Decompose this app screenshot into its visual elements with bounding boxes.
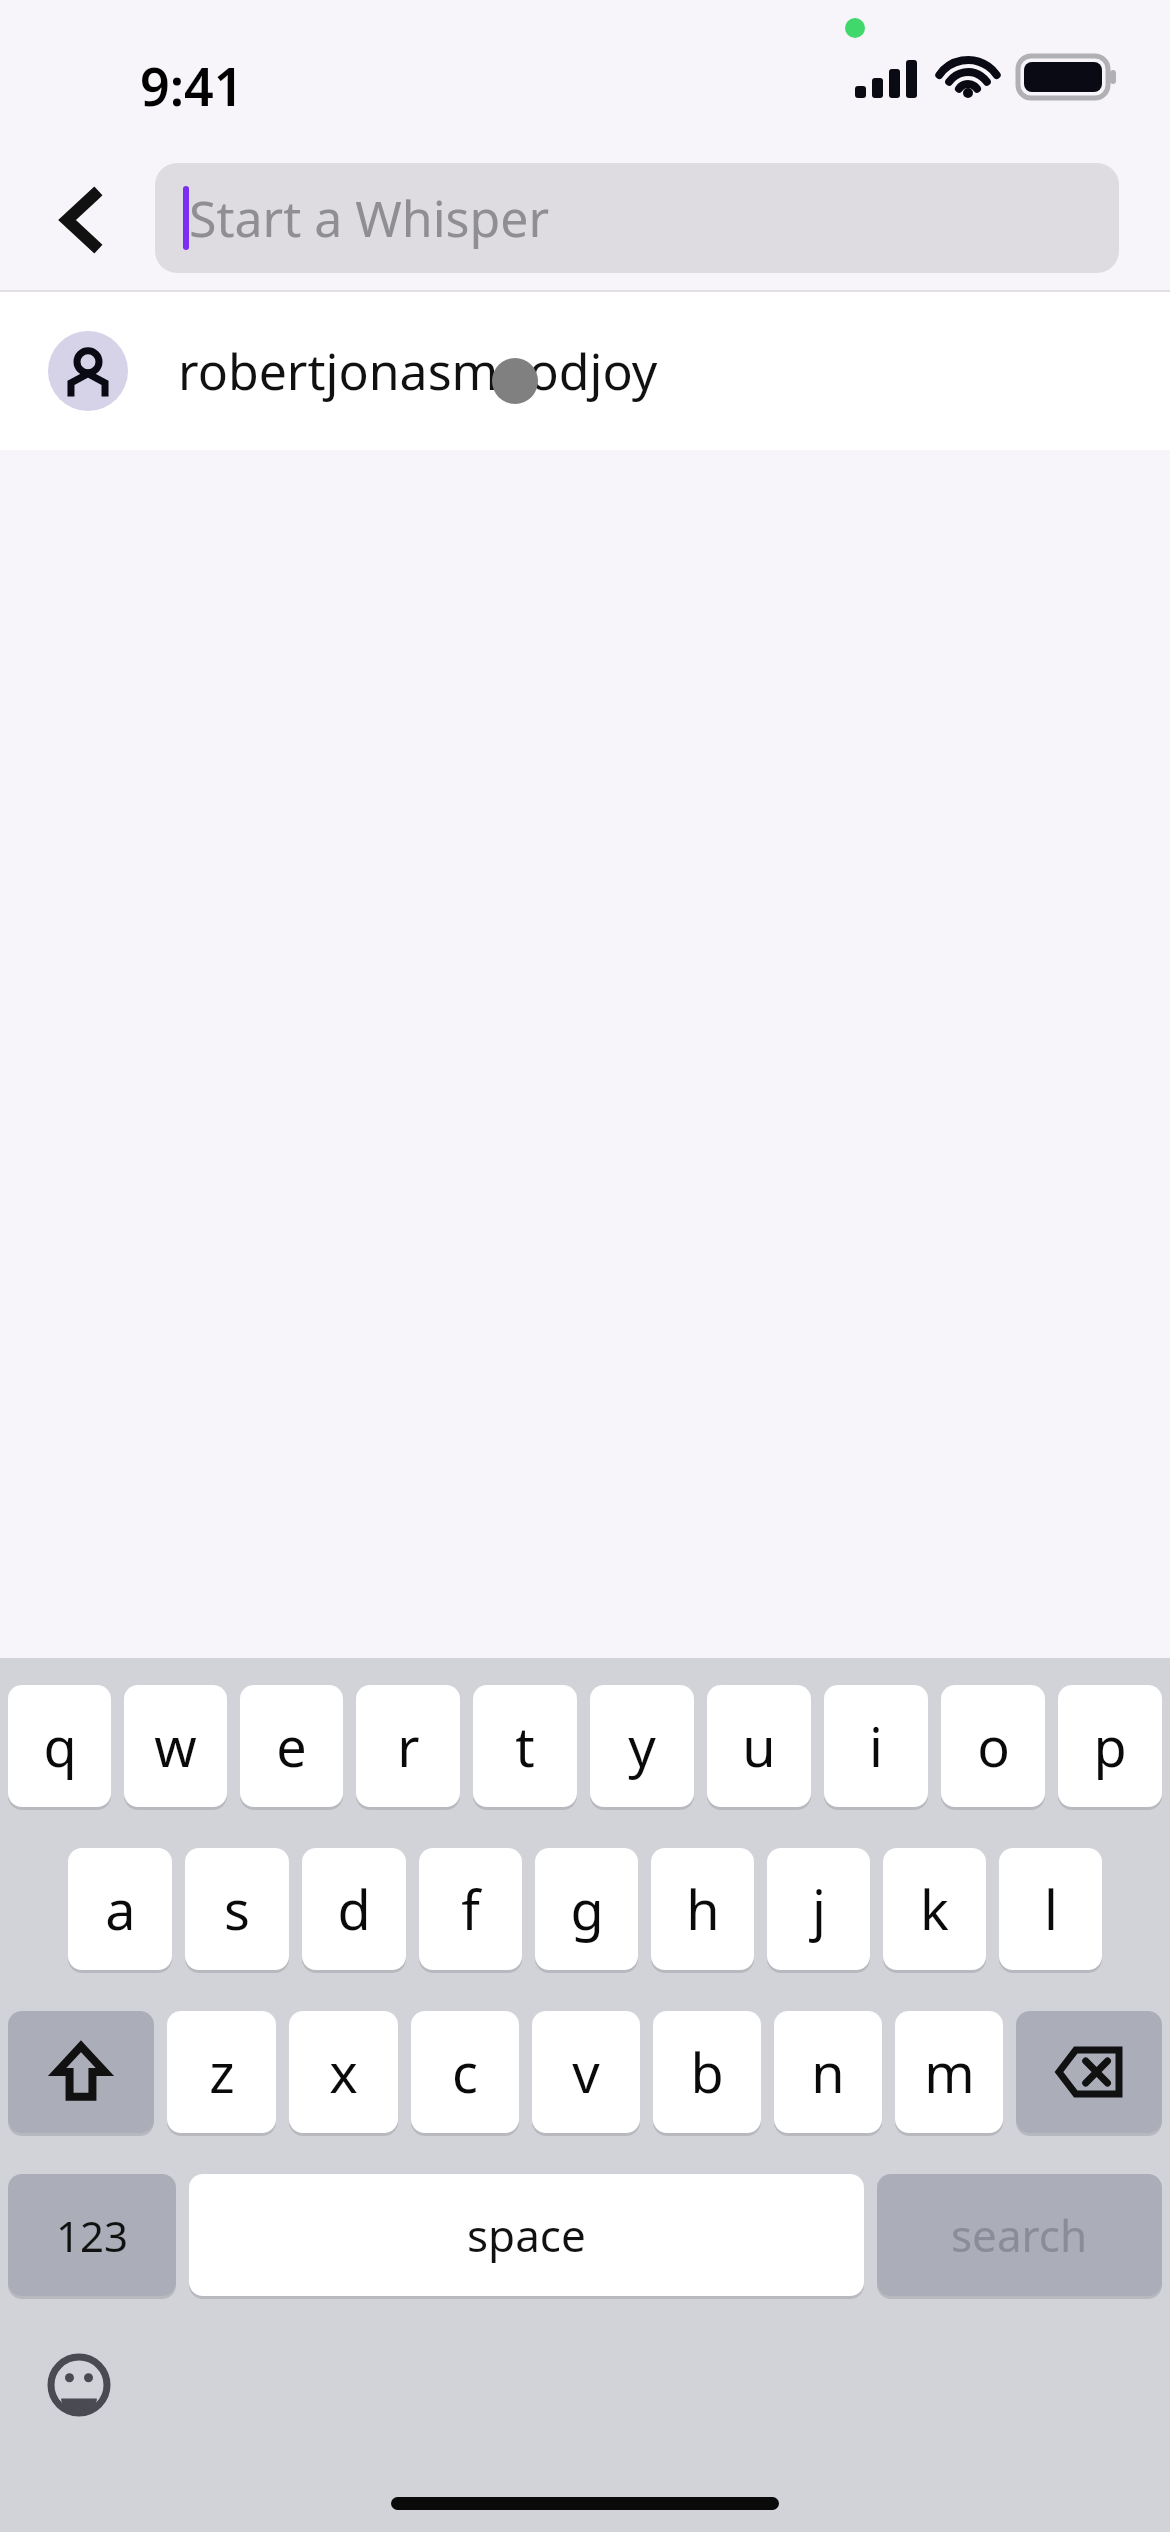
staticText: i <box>869 1709 883 1783</box>
button[interactable]: Start a Whisper <box>155 163 1119 273</box>
button[interactable]: c <box>411 2011 519 2133</box>
staticText: 123 <box>56 2207 129 2264</box>
button[interactable]: l <box>999 1848 1102 1970</box>
button[interactable]: h <box>651 1848 754 1970</box>
button[interactable]: x <box>289 2011 398 2133</box>
button[interactable]: Backspace <box>1016 2011 1162 2133</box>
staticText: d <box>337 1872 371 1946</box>
staticText: space <box>467 2205 586 2265</box>
staticText: Start a Whisper <box>189 184 550 252</box>
button[interactable]: s <box>185 1848 289 1970</box>
staticText: y <box>628 1709 656 1783</box>
button[interactable]: g <box>535 1848 638 1970</box>
staticText: r <box>397 1709 420 1783</box>
button[interactable]: q <box>8 1685 111 1807</box>
staticText: search <box>951 2205 1088 2265</box>
button[interactable]: b <box>653 2011 761 2133</box>
staticText: b <box>690 2035 724 2109</box>
button[interactable]: Back <box>30 170 130 270</box>
staticText: k <box>920 1872 949 1946</box>
staticText: n <box>811 2035 845 2109</box>
staticText: f <box>461 1872 480 1946</box>
staticText: o <box>977 1709 1010 1783</box>
staticText: h <box>686 1872 720 1946</box>
staticText: x <box>329 2035 358 2109</box>
staticText: 9:41 <box>140 50 244 121</box>
button[interactable]: y <box>590 1685 694 1807</box>
button[interactable]: i <box>824 1685 928 1807</box>
button[interactable]: d <box>302 1848 406 1970</box>
staticText: v <box>572 2035 600 2109</box>
button[interactable]: robertjonasmoodjoy <box>0 292 1170 450</box>
button[interactable]: 123 <box>8 2174 176 2296</box>
button[interactable]: p <box>1058 1685 1162 1807</box>
button[interactable]: Shift <box>8 2011 154 2133</box>
staticText: a <box>105 1872 136 1946</box>
button[interactable]: f <box>419 1848 522 1970</box>
button[interactable]: space <box>189 2174 864 2296</box>
button[interactable]: j <box>767 1848 870 1970</box>
button[interactable]: e <box>240 1685 343 1807</box>
staticText: c <box>452 2035 478 2109</box>
staticText: z <box>209 2035 235 2109</box>
staticText: j <box>812 1872 826 1946</box>
staticText: u <box>742 1709 776 1783</box>
staticText: robertjonasmoodjoy <box>178 337 658 405</box>
staticText: l <box>1044 1872 1058 1946</box>
staticText: g <box>570 1872 604 1946</box>
button[interactable]: v <box>532 2011 640 2133</box>
button[interactable]: n <box>774 2011 882 2133</box>
button[interactable]: t <box>473 1685 577 1807</box>
staticText: e <box>276 1709 307 1783</box>
staticText: t <box>515 1709 535 1783</box>
button[interactable]: m <box>895 2011 1003 2133</box>
staticText: s <box>224 1872 250 1946</box>
button[interactable]: o <box>941 1685 1045 1807</box>
button[interactable]: u <box>707 1685 811 1807</box>
button[interactable]: w <box>124 1685 227 1807</box>
button[interactable]: a <box>68 1848 172 1970</box>
staticText: w <box>154 1709 197 1783</box>
staticText: q <box>43 1709 77 1783</box>
button[interactable]: z <box>167 2011 276 2133</box>
staticText: p <box>1093 1709 1127 1783</box>
button[interactable]: k <box>883 1848 986 1970</box>
button[interactable]: r <box>356 1685 460 1807</box>
button[interactable]: Emoji keyboard <box>42 2348 116 2422</box>
staticText: m <box>924 2035 975 2109</box>
button[interactable]: search <box>877 2174 1162 2296</box>
